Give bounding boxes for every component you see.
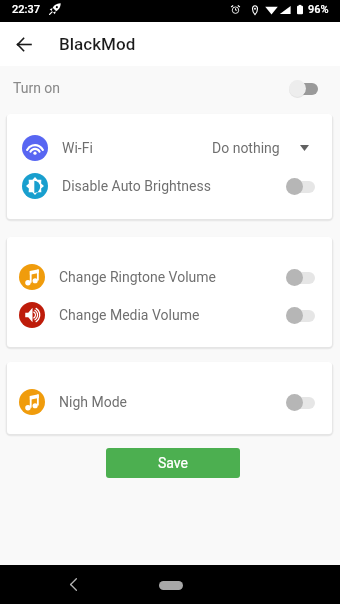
staticText: Change Media Volume	[59, 307, 200, 323]
button[interactable]: Disable Auto Brightness	[7, 167, 332, 205]
staticText: Turn on	[13, 80, 61, 96]
button[interactable]: Change Media Volume	[7, 296, 332, 334]
staticText: BlackMod	[59, 34, 136, 54]
staticText: 22:37	[12, 3, 40, 16]
staticText: Save	[158, 455, 188, 471]
button[interactable]: Nigh Mode	[7, 383, 332, 421]
button[interactable]: Back	[9, 29, 39, 59]
button[interactable]: Wi-Fi	[7, 129, 332, 167]
staticText: Change Ringtone Volume	[59, 269, 217, 285]
staticText: Disable Auto Brightness	[62, 178, 211, 194]
button[interactable]: Save	[106, 448, 240, 478]
button[interactable]: Home	[151, 573, 191, 597]
button[interactable]: Back	[58, 569, 88, 599]
button[interactable]: Change Ringtone Volume	[7, 258, 332, 296]
staticText: Do nothing	[212, 140, 280, 156]
staticText: Nigh Mode	[59, 394, 127, 410]
staticText: Wi-Fi	[62, 140, 93, 156]
button[interactable]: Turn on	[0, 66, 340, 110]
staticText: 96%	[308, 3, 329, 16]
